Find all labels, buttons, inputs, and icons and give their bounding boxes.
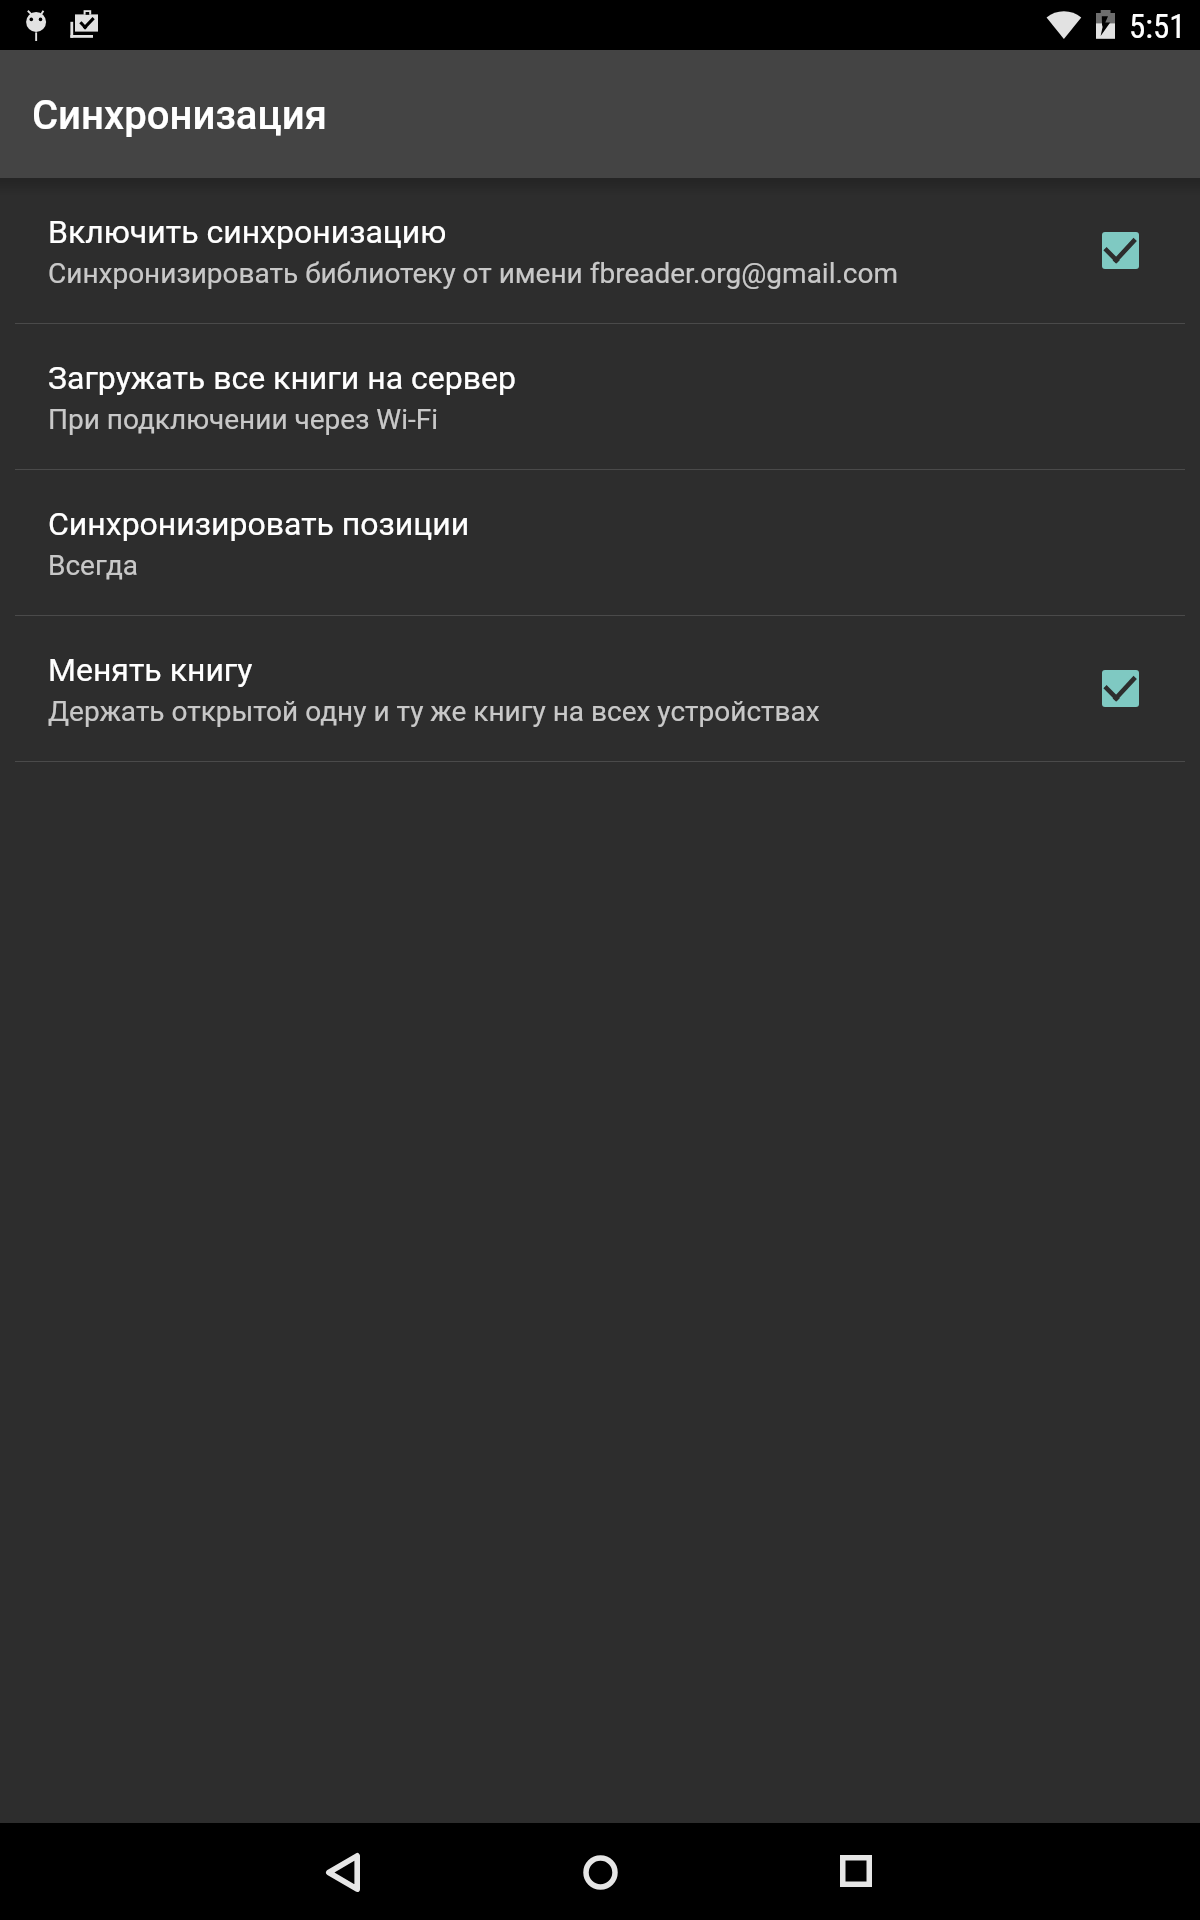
staticText: Менять книгу [48,651,253,689]
button[interactable]: Синхронизировать позиции [0,470,1200,615]
button[interactable]: Загружать все книги на сервер [0,324,1200,469]
staticText: Синхронизировать позиции [48,505,470,543]
staticText: Синхронизировать библиотеку от имени fbr… [48,257,899,290]
button[interactable]: Менять книгу [0,616,1200,761]
button[interactable]: Back [295,1823,391,1919]
staticText: Держать открытой одну и ту же книгу на в… [48,695,820,728]
staticText: Загружать все книги на сервер [48,359,516,397]
staticText: 5:51 [1129,7,1186,46]
staticText: Синхронизация [32,92,327,139]
button[interactable]: Recent apps [808,1823,904,1919]
button[interactable]: Toggle setting [1102,670,1139,707]
staticText: При подключении через Wi-Fi [48,403,439,436]
staticText: Всегда [48,549,139,582]
button[interactable]: Home [552,1824,648,1920]
button[interactable]: Включить синхронизацию [0,178,1200,323]
staticText: Включить синхронизацию [48,213,447,251]
button[interactable]: Toggle setting [1102,232,1139,269]
